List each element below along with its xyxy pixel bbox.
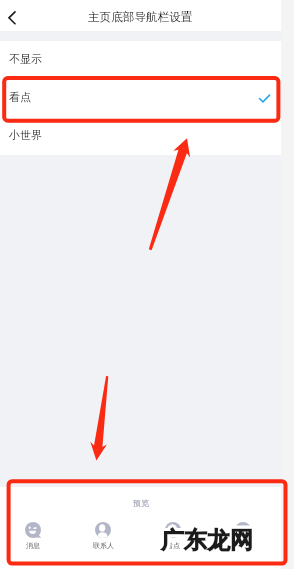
staticText: 联系人 (93, 541, 114, 550)
button[interactable]: 看点 (138, 522, 208, 547)
button[interactable]: Back (0, 0, 26, 31)
staticText: 小世界 (9, 128, 42, 142)
staticText: 看点 (166, 541, 180, 550)
button[interactable]: 消息 (0, 522, 68, 547)
staticText: 看点 (9, 90, 31, 104)
staticText: 预览 (133, 498, 149, 508)
button[interactable]: 联系人 (68, 522, 138, 547)
button[interactable]: 小世界 (0, 117, 281, 155)
staticText: 主页底部导航栏设置 (88, 10, 193, 25)
staticText: 消息 (26, 541, 40, 550)
button[interactable]: 看点 (0, 79, 281, 117)
button[interactable]: 空间 (208, 522, 278, 547)
staticText: 不显示 (9, 52, 42, 66)
button[interactable]: 不显示 (0, 41, 281, 79)
staticText: 空间 (236, 541, 250, 550)
